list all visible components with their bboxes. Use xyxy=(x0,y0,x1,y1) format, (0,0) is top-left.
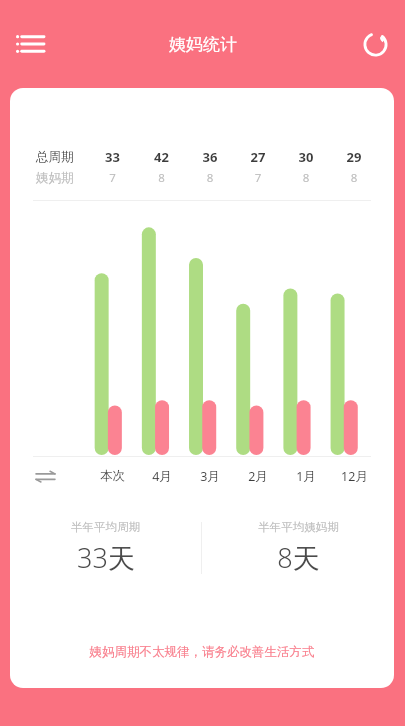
staticText: 7 xyxy=(88,170,137,186)
staticText: 29 xyxy=(330,148,378,166)
staticText: 4月 xyxy=(152,468,172,485)
button[interactable]: 本次 xyxy=(88,463,137,489)
staticText: 33天 xyxy=(77,539,135,576)
staticText: 姨妈期 xyxy=(36,170,88,186)
staticText: 8天 xyxy=(277,539,320,576)
button[interactable]: 12月 xyxy=(330,463,378,489)
staticText: 27 xyxy=(234,148,282,166)
staticText: 姨妈周期不太规律，请务必改善生活方式 xyxy=(10,644,394,660)
staticText: 8 xyxy=(137,170,186,186)
button[interactable]: Refresh xyxy=(353,22,397,66)
button[interactable]: 半年平均姨妈期 xyxy=(202,520,394,576)
staticText: 3月 xyxy=(200,468,220,485)
staticText: 总周期 xyxy=(36,149,88,165)
button[interactable]: Switch data xyxy=(36,463,88,489)
button[interactable]: 3月 xyxy=(186,463,234,489)
staticText: 8 xyxy=(330,170,378,186)
staticText: 本次 xyxy=(100,468,125,484)
staticText: 8 xyxy=(186,170,234,186)
staticText: 36 xyxy=(186,148,234,166)
staticText: 半年平均周期 xyxy=(71,520,140,534)
staticText: 1月 xyxy=(296,468,316,485)
staticText: 8 xyxy=(282,170,330,186)
button[interactable]: 半年平均周期 xyxy=(10,520,201,576)
staticText: 30 xyxy=(282,148,330,166)
button[interactable]: 1月 xyxy=(282,463,330,489)
button[interactable]: Menu xyxy=(8,22,52,66)
staticText: 42 xyxy=(137,148,186,166)
staticText: 7 xyxy=(234,170,282,186)
staticText: 姨妈统计 xyxy=(169,34,237,55)
staticText: 33 xyxy=(88,148,137,166)
staticText: 半年平均姨妈期 xyxy=(258,520,339,534)
staticText: 12月 xyxy=(341,468,368,485)
button[interactable]: 2月 xyxy=(234,463,282,489)
staticText: 2月 xyxy=(248,468,268,485)
button[interactable]: 4月 xyxy=(137,463,186,489)
